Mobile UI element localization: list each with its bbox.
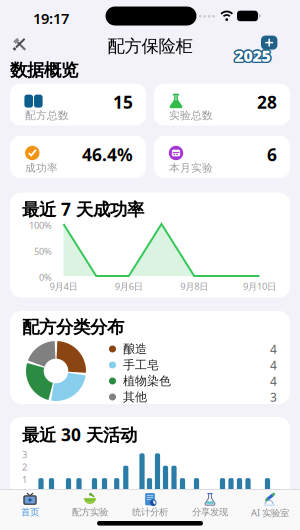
staticText: 9月8日 [180, 280, 208, 292]
staticText: 2025 [236, 45, 272, 66]
staticText: 9月4日 [49, 280, 77, 292]
staticText: 配方分类分布 [22, 316, 124, 338]
staticText: 最近 30 天活动 [22, 423, 137, 446]
staticText: 2025 [233, 44, 269, 65]
button[interactable]: 46.4% [10, 136, 146, 178]
staticText: 50% [34, 245, 52, 257]
staticText: 2 [22, 461, 27, 473]
staticText: 4 [270, 341, 277, 357]
button[interactable]: 15 [10, 83, 146, 125]
staticText: 首页 [21, 506, 39, 518]
staticText: 2025 [235, 44, 271, 65]
button[interactable]: 配方实验 [60, 491, 120, 521]
staticText: 0% [39, 271, 52, 283]
staticText: 配方总数 [25, 109, 69, 122]
staticText: 46.4% [82, 143, 133, 166]
staticText: 最近 7 天成功率 [22, 197, 144, 220]
staticText: 统计分析 [132, 506, 168, 518]
button[interactable]: 28 [154, 83, 290, 125]
staticText: 19:17 [33, 8, 69, 28]
staticText: 15 [113, 90, 133, 113]
button[interactable]: AI 实验室 [240, 491, 300, 521]
staticText: 4 [270, 373, 277, 389]
staticText: 2025 [233, 45, 269, 66]
staticText: 9月6日 [115, 280, 143, 292]
staticText: 100% [29, 219, 52, 231]
staticText: 2025 [234, 45, 270, 66]
staticText: 酿造 [123, 342, 147, 356]
button[interactable]: 分享发现 [180, 491, 240, 521]
staticText: 实验总数 [169, 109, 213, 122]
staticText: 本月实验 [169, 161, 213, 175]
staticText: 9月10日 [243, 280, 276, 292]
staticText: 数据概览 [10, 59, 78, 81]
staticText: 其他 [123, 390, 147, 404]
staticText: 3 [270, 389, 277, 405]
button[interactable]: 6 [154, 136, 290, 178]
staticText: 成功率 [25, 161, 58, 175]
button[interactable]: 工具 [12, 37, 27, 52]
staticText: 配方实验 [72, 506, 108, 518]
staticText: 4 [270, 357, 277, 373]
staticText: 植物染色 [123, 374, 171, 388]
staticText: AI 实验室 [251, 506, 289, 519]
button[interactable]: 添加 [261, 36, 277, 50]
staticText: 手工皂 [123, 358, 159, 372]
staticText: 分享发现 [192, 506, 228, 518]
staticText: 2025 [233, 46, 269, 67]
staticText: 2025 [234, 43, 270, 65]
staticText: 2025 [234, 46, 270, 67]
button[interactable]: 首页 [0, 491, 60, 521]
staticText: 1 [22, 473, 27, 485]
staticText: 3 [22, 448, 27, 461]
staticText: 28 [257, 90, 277, 113]
button[interactable]: 统计分析 [120, 491, 180, 521]
staticText: 配方保险柜 [107, 35, 192, 57]
staticText: 6 [267, 143, 277, 166]
staticText: 2025 [235, 46, 271, 67]
